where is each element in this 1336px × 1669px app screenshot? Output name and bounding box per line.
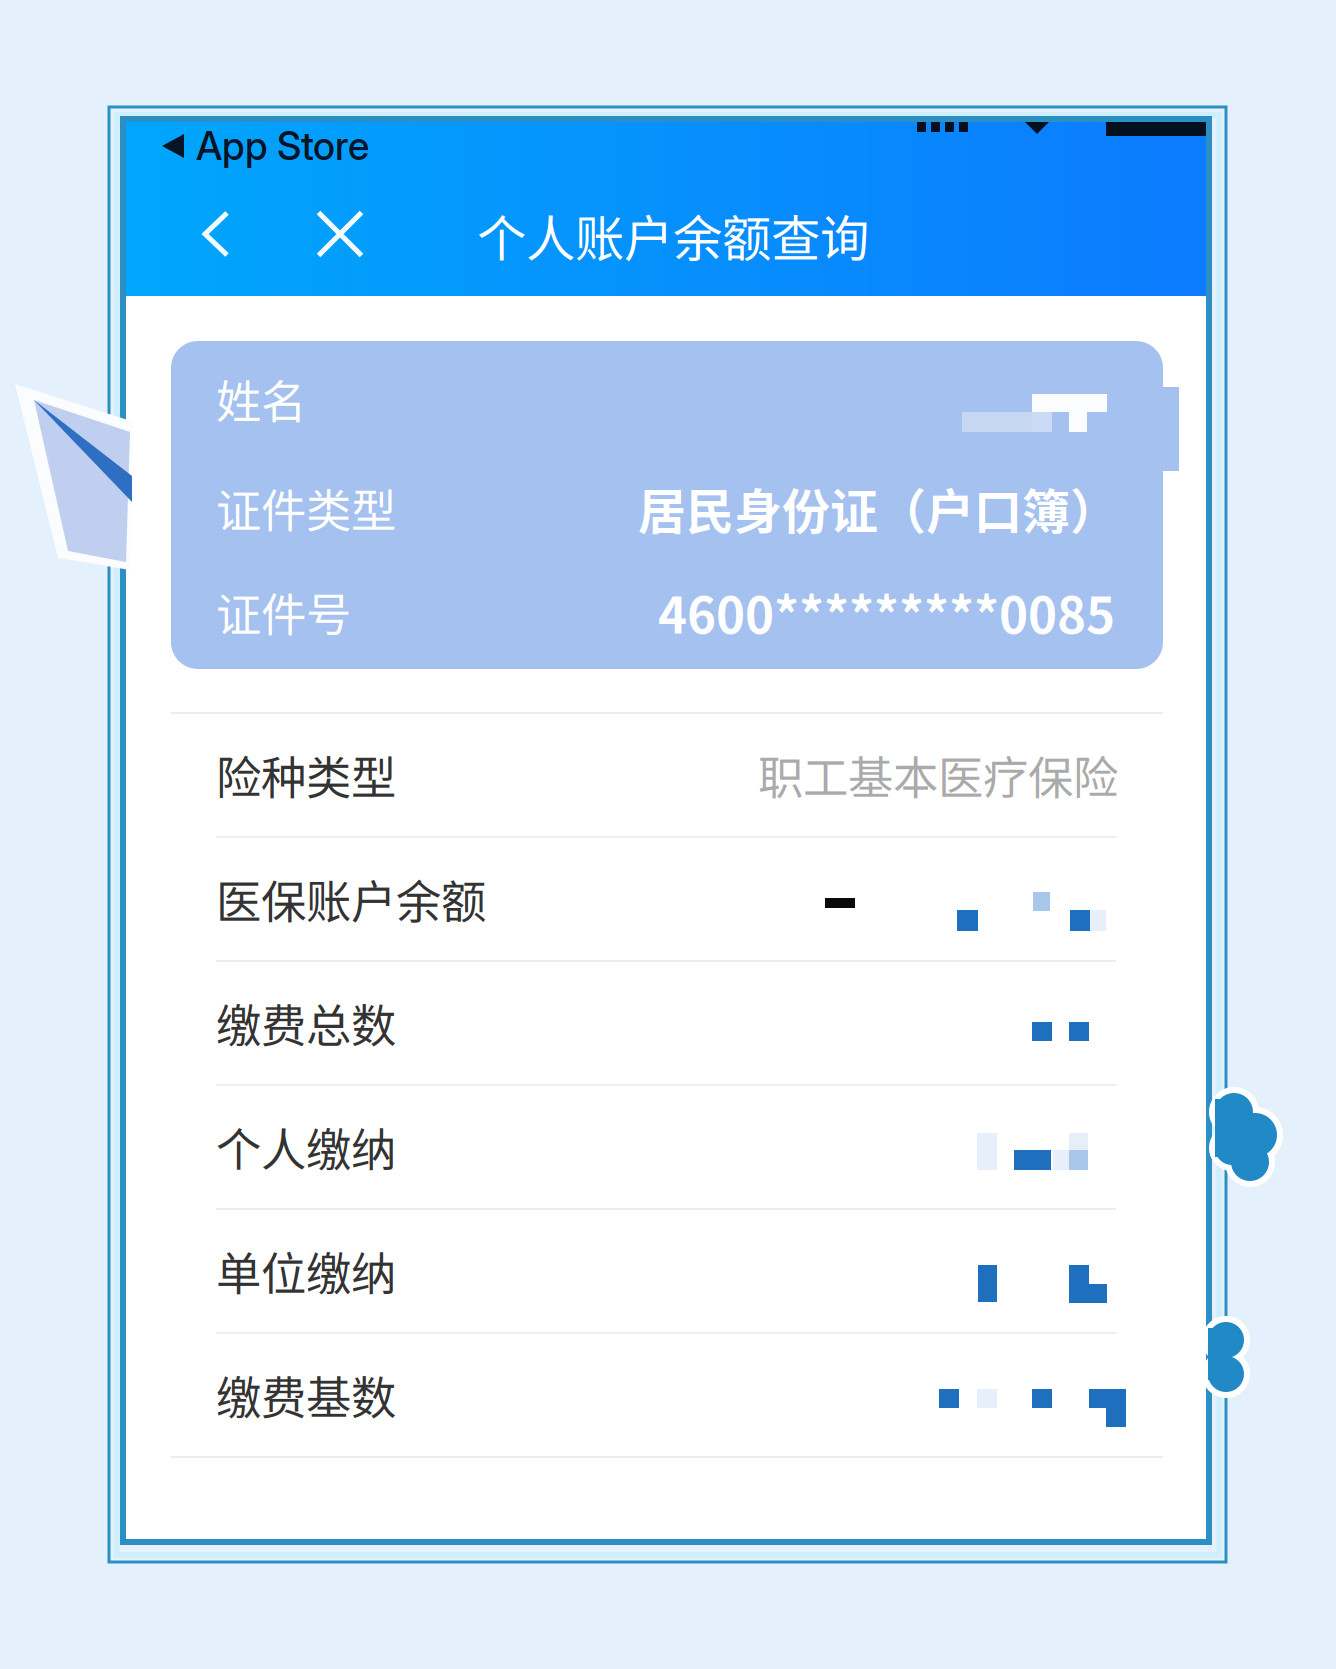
staticText: 证件号 <box>216 579 351 645</box>
button[interactable]: 个人缴纳 <box>126 1086 1206 1208</box>
button[interactable]: 医保账户余额 <box>126 838 1206 960</box>
button[interactable]: App Store <box>162 120 482 172</box>
staticText: 缴费总数 <box>216 990 396 1056</box>
button[interactable]: 单位缴纳 <box>126 1210 1206 1332</box>
staticText: 险种类型 <box>216 742 396 808</box>
staticText: 个人账户余额查询 <box>477 199 869 271</box>
staticText: 缴费基数 <box>216 1362 396 1428</box>
staticText: 单位缴纳 <box>216 1238 396 1304</box>
button[interactable]: 缴费基数 <box>126 1334 1206 1456</box>
staticText: 个人缴纳 <box>216 1114 396 1180</box>
staticText: 证件类型 <box>216 475 396 541</box>
staticText: App Store <box>196 123 369 169</box>
button[interactable]: 险种类型 <box>126 714 1206 836</box>
button[interactable]: Back <box>171 189 261 279</box>
staticText: 职工基本医疗保险 <box>758 742 1118 808</box>
button[interactable]: 缴费总数 <box>126 962 1206 1084</box>
staticText: 姓名 <box>216 366 306 432</box>
staticText: 4600*********0085 <box>658 576 1115 648</box>
button[interactable]: Close <box>295 189 385 279</box>
staticText: 医保账户余额 <box>216 866 486 932</box>
staticText: 居民身份证（户口簿） <box>638 473 1118 543</box>
